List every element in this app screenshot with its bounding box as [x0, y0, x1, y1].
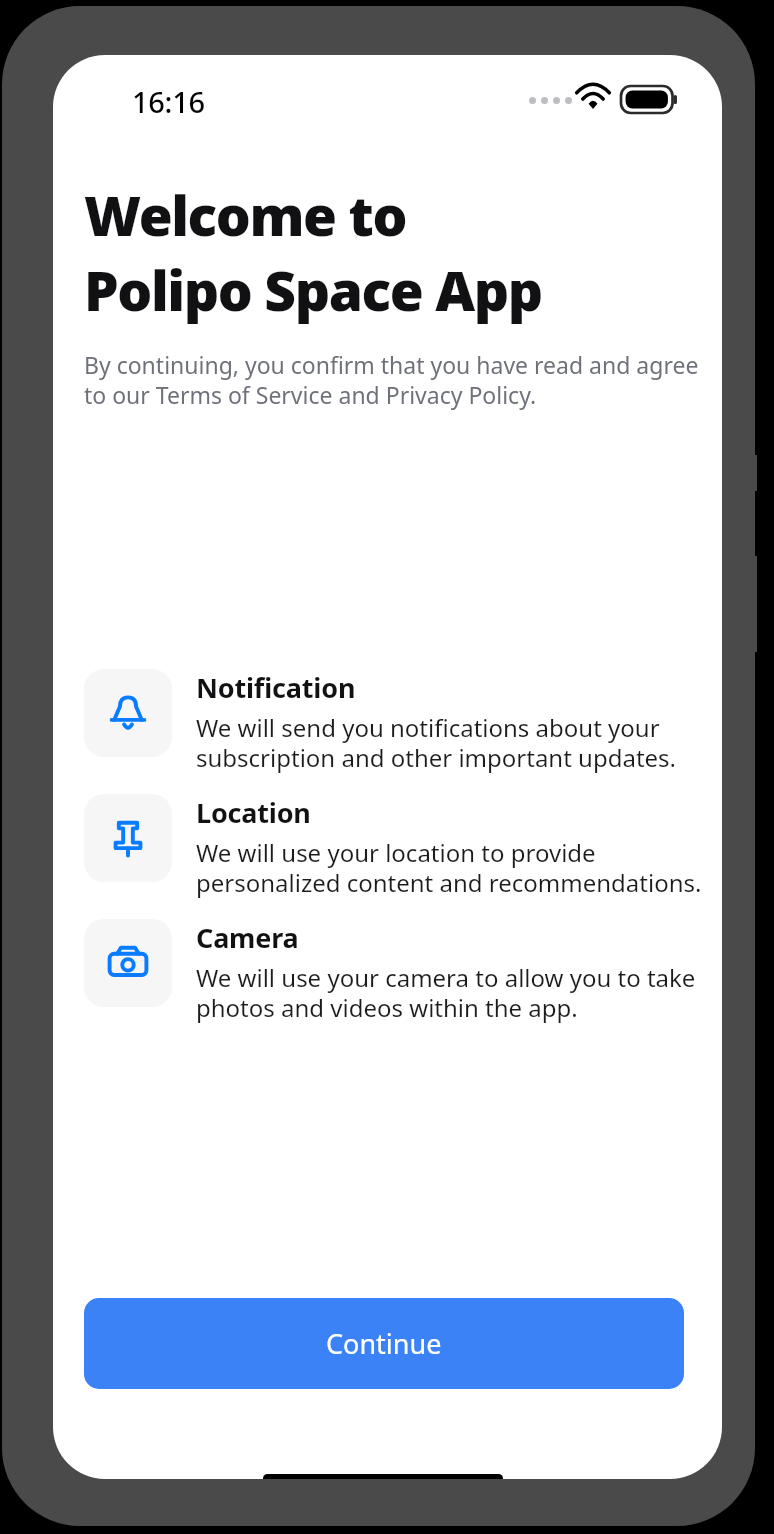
staticText: By continuing, you confirm that you have…: [84, 349, 704, 411]
staticText: We will use your camera to allow you to …: [196, 961, 704, 1024]
button[interactable]: Notification: [84, 669, 704, 774]
other: Camera: [105, 940, 151, 986]
button[interactable]: Camera: [84, 919, 704, 1024]
staticText: Camera: [196, 919, 299, 956]
staticText: 16:16: [132, 82, 205, 121]
other: Notification: [105, 690, 151, 736]
staticText: Polipo Space App: [84, 252, 542, 327]
button[interactable]: Location: [84, 794, 704, 899]
staticText: Continue: [326, 1325, 442, 1362]
staticText: We will send you notifications about you…: [196, 711, 704, 774]
staticText: We will use your location to provide per…: [196, 836, 704, 899]
staticText: Notification: [196, 669, 356, 706]
staticText: Welcome to: [84, 177, 407, 252]
button[interactable]: Continue: [84, 1298, 684, 1389]
other: Location: [105, 815, 151, 861]
staticText: Location: [196, 794, 311, 831]
